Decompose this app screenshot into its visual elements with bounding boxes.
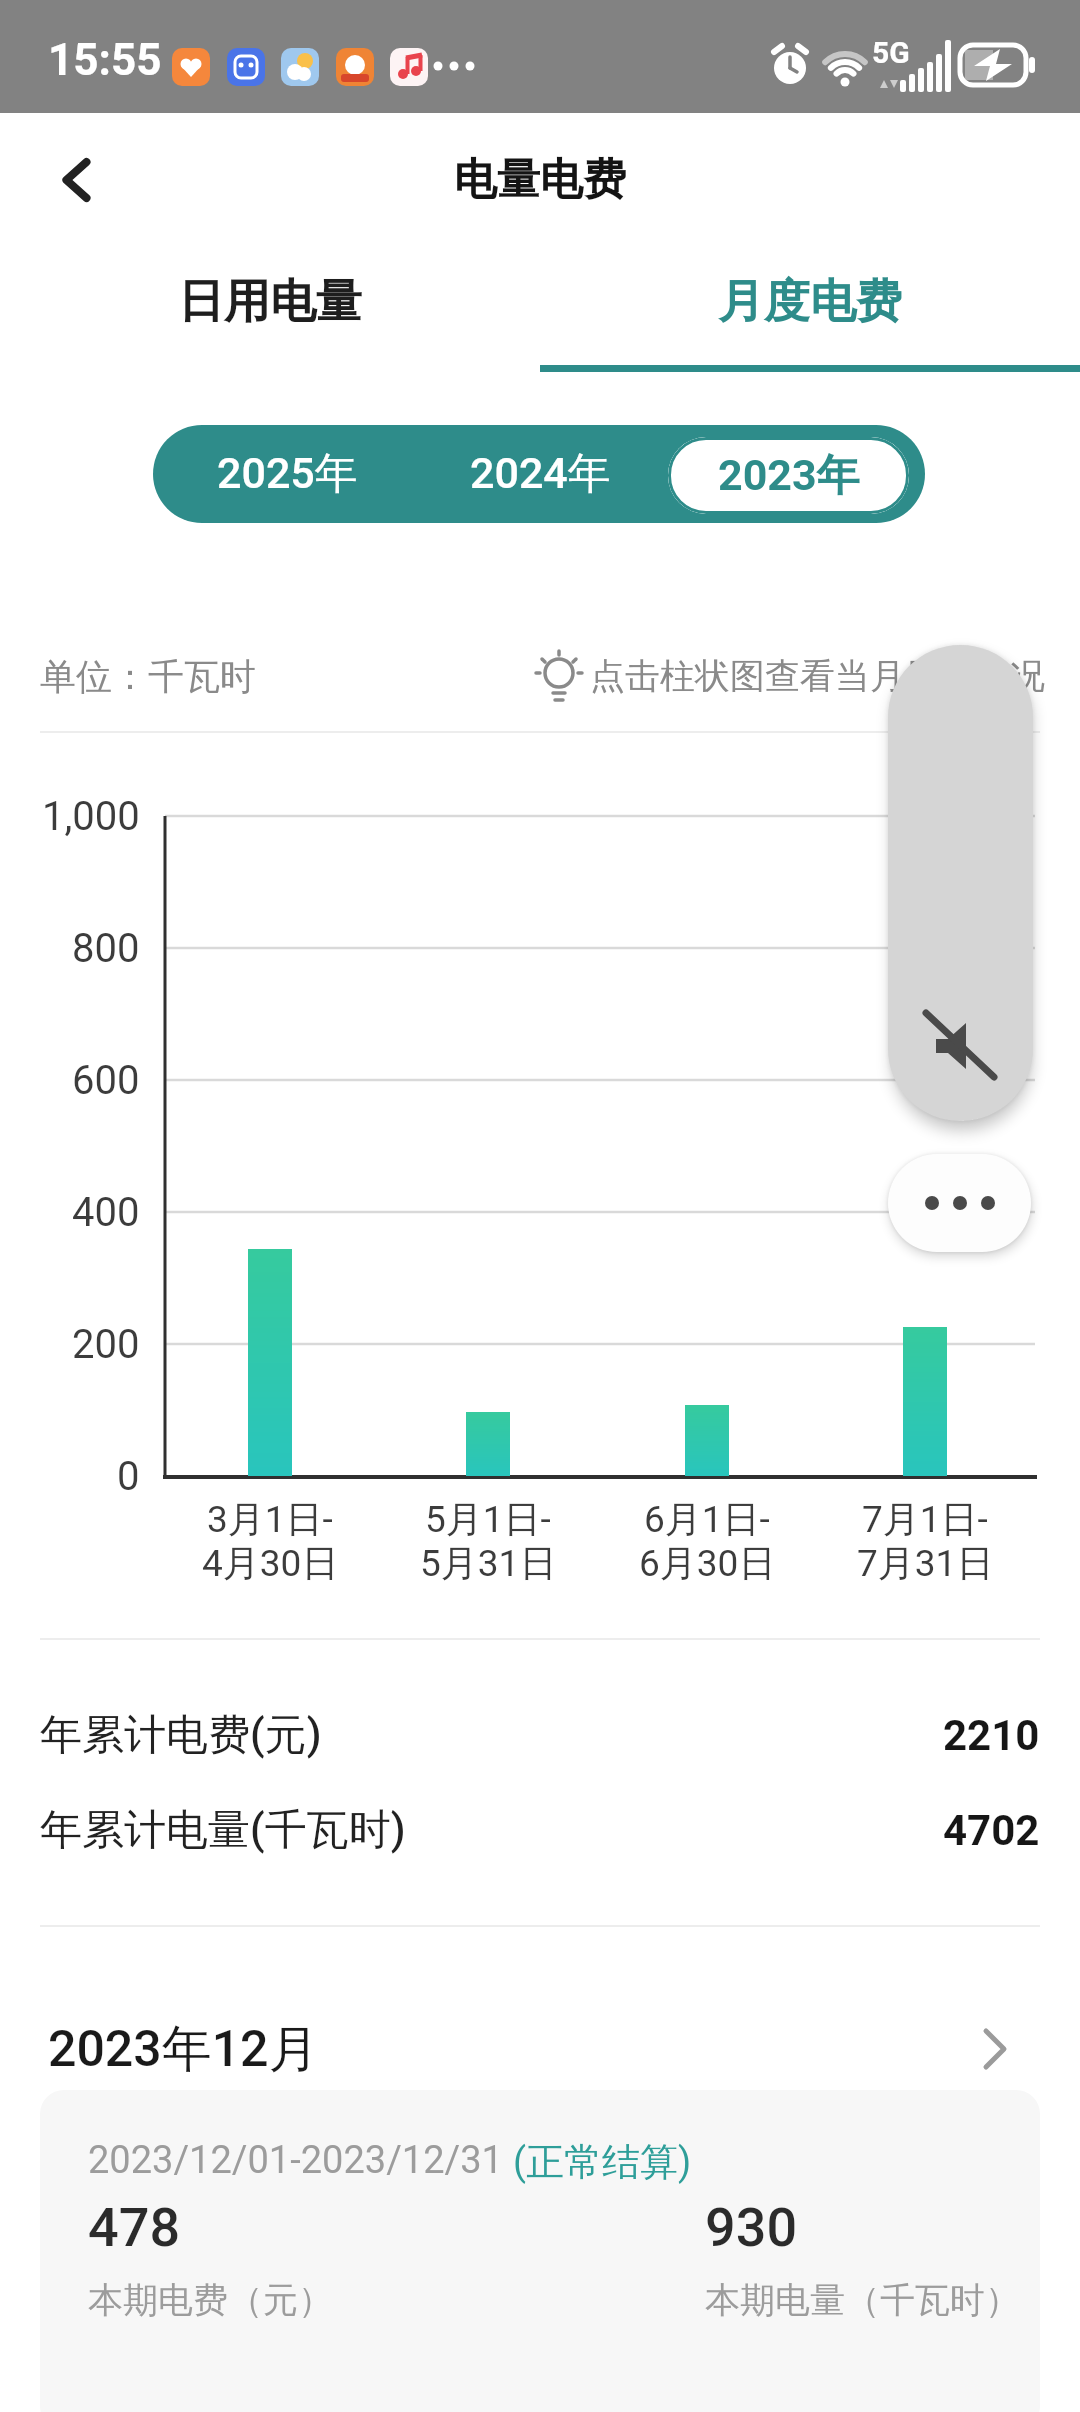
button[interactable]: 月度电费: [540, 272, 1080, 332]
staticText: 2023年: [718, 449, 860, 503]
staticText: 5月1日-: [425, 1496, 551, 1543]
button[interactable]: [0, 780, 1080, 1500]
staticText: (正常结算): [513, 2138, 692, 2186]
staticText: 年累计电费(元): [40, 1709, 322, 1762]
staticText: 930: [705, 2196, 798, 2259]
staticText: 800: [72, 925, 140, 972]
staticText: 2024年: [470, 447, 611, 501]
staticText: 5月31日: [420, 1540, 557, 1587]
staticText: 月度电费: [718, 273, 902, 331]
staticText: 2210: [943, 1711, 1040, 1760]
button[interactable]: 日用电量: [0, 272, 540, 332]
staticText: 电量电费: [454, 153, 626, 207]
staticText: 5G: [872, 35, 910, 70]
staticText: 4月30日: [202, 1540, 339, 1587]
staticText: 3月1日-: [207, 1496, 333, 1543]
staticText: 本期电量（千瓦时）: [705, 2278, 1020, 2322]
staticText: 年累计电量(千瓦时): [40, 1804, 406, 1857]
staticText: 400: [72, 1189, 140, 1236]
button[interactable]: [888, 1154, 1031, 1252]
button[interactable]: [888, 645, 1033, 1121]
button[interactable]: 2023/12/01-2023/12/31: [40, 2090, 1040, 2412]
staticText: 2025年: [217, 447, 358, 501]
staticText: 6月30日: [639, 1540, 776, 1587]
staticText: 2023/12/01-2023/12/31: [88, 2138, 513, 2183]
staticText: 单位：千瓦时: [40, 654, 256, 699]
staticText: 200: [72, 1321, 140, 1368]
staticText: 本期电费（元）: [88, 2278, 333, 2322]
staticText: 600: [72, 1057, 140, 1104]
button[interactable]: 2023年12月: [48, 2018, 748, 2080]
staticText: 2023年12月: [48, 2018, 319, 2080]
staticText: 15:55: [48, 34, 162, 86]
staticText: 7月31日: [857, 1540, 994, 1587]
button[interactable]: [44, 148, 108, 212]
staticText: 日用电量: [178, 273, 362, 331]
staticText: 478: [88, 2196, 181, 2259]
staticText: 1,000: [42, 793, 140, 840]
staticText: 0: [117, 1453, 140, 1500]
button[interactable]: 2025年: [153, 425, 421, 523]
staticText: 点击柱状图查看当月用电情况: [590, 654, 1045, 698]
staticText: 4702: [943, 1806, 1040, 1855]
staticText: 6月1日-: [644, 1496, 770, 1543]
button[interactable]: 2024年: [406, 425, 674, 523]
button[interactable]: 2023年: [668, 437, 909, 514]
staticText: 7月1日-: [862, 1496, 988, 1543]
